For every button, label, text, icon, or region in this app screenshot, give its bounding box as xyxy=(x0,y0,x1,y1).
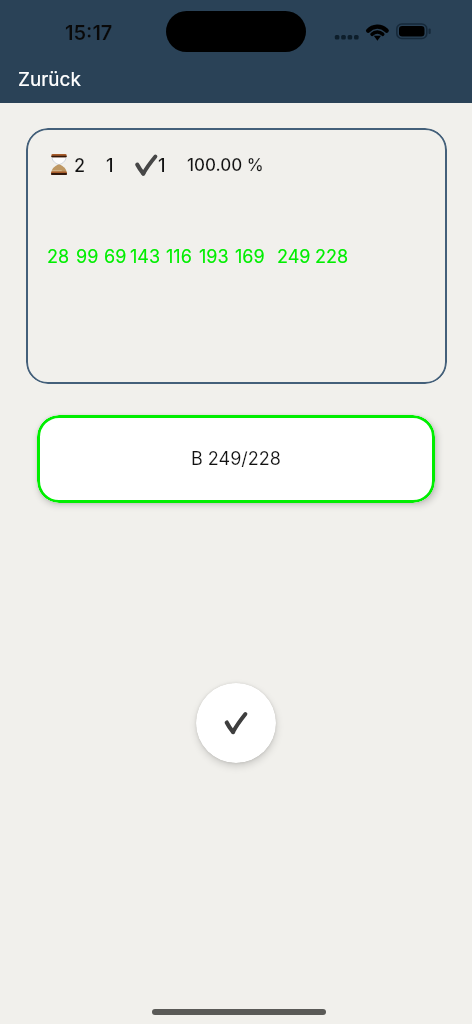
staticText: 116 xyxy=(166,246,192,268)
staticText: 2 xyxy=(74,155,86,177)
staticText: 228 xyxy=(315,246,349,268)
staticText: 193 xyxy=(199,246,229,268)
staticText: 99 xyxy=(76,246,99,268)
staticText: 143 xyxy=(130,246,161,268)
button[interactable]: B 249/228 xyxy=(37,415,435,503)
other: Status icons xyxy=(330,18,440,46)
staticText: 100.00 % xyxy=(187,155,264,176)
staticText: Zurück xyxy=(18,68,81,91)
staticText: 69 xyxy=(104,246,127,268)
button[interactable]: Confirm xyxy=(196,683,276,763)
button[interactable]: Zurück xyxy=(6,58,92,102)
staticText: 1 xyxy=(158,155,166,177)
staticText: 249 xyxy=(277,246,311,268)
staticText: B 249/228 xyxy=(191,448,281,470)
staticText: 15:17 xyxy=(65,21,113,45)
staticText: 28 xyxy=(47,246,70,268)
staticText: 1 xyxy=(106,155,114,177)
staticText: 169 xyxy=(235,246,265,268)
